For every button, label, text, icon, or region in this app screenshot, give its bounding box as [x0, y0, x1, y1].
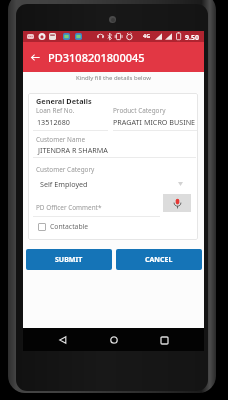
button[interactable]: Voice input: [163, 194, 191, 212]
button[interactable]: Self Employed: [28, 177, 198, 191]
button[interactable]: Contactable: [38, 222, 89, 231]
staticText: 13512680: [37, 117, 70, 127]
button[interactable]: Home: [103, 329, 125, 351]
staticText: General Details: [36, 96, 92, 106]
staticText: Customer Category: [36, 165, 95, 174]
staticText: 4G: [143, 32, 151, 39]
button[interactable]: SUBMIT: [26, 249, 112, 270]
staticText: Kindly fill the details below: [76, 74, 151, 82]
button[interactable]: CANCEL: [116, 249, 202, 270]
staticText: Product Category: [113, 106, 166, 115]
staticText: JITENDRA R SHARMA: [38, 145, 108, 155]
staticText: Self Employed: [40, 179, 88, 189]
staticText: PRAGATI MICRO BUSINE: [113, 117, 196, 127]
staticText: PD Officer Comment*: [36, 203, 102, 212]
staticText: CANCEL: [145, 255, 173, 265]
staticText: PD3108201800045: [48, 50, 145, 65]
staticText: SUBMIT: [55, 255, 83, 265]
button[interactable]: Recents: [153, 329, 175, 351]
button[interactable]: Back: [52, 329, 74, 351]
staticText: 9.50: [185, 33, 199, 43]
staticText: Loan Ref No.: [36, 106, 75, 115]
button[interactable]: Back: [23, 42, 47, 72]
staticText: Contactable: [50, 222, 89, 231]
staticText: Customer Name: [36, 135, 86, 144]
